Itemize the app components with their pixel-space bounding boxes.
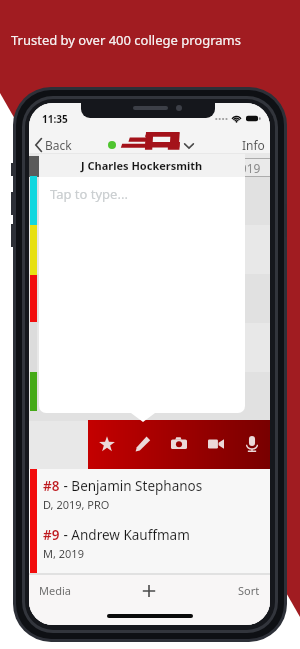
- staticText: Back: [45, 137, 72, 153]
- staticText: #9: [43, 526, 60, 544]
- button[interactable]: #9: [29, 518, 270, 567]
- button[interactable]: Add: [136, 578, 162, 604]
- staticText: Trusted by over 400 college programs: [11, 31, 241, 49]
- button[interactable]: Video: [202, 430, 230, 458]
- button[interactable]: Back: [32, 134, 76, 156]
- staticText: D, 2019, PRO: [43, 497, 110, 512]
- button[interactable]: Edit: [129, 430, 157, 458]
- staticText: Info: [242, 137, 265, 153]
- button[interactable]: Sort: [232, 578, 266, 603]
- button[interactable]: Info: [238, 134, 269, 156]
- button[interactable]: #8: [29, 469, 270, 518]
- staticText: Sort: [238, 583, 260, 598]
- staticText: - Andrew Kauffmam: [60, 526, 190, 544]
- button[interactable]: Media: [33, 578, 77, 603]
- staticText: - Benjamin Stephanos: [60, 477, 203, 495]
- staticText: Tap to type...: [50, 185, 128, 203]
- staticText: 2019: [233, 160, 261, 176]
- staticText: M, 2019: [43, 546, 84, 561]
- button[interactable]: Favourite: [93, 430, 121, 458]
- button[interactable]: Photo: [165, 430, 193, 458]
- staticText: J Charles Hockersmith: [81, 158, 203, 173]
- staticText: Media: [39, 583, 71, 598]
- button[interactable]: [119, 131, 180, 150]
- staticText: #8: [43, 477, 60, 495]
- staticText: 11:35: [42, 112, 68, 126]
- button[interactable]: Record audio: [238, 430, 266, 458]
